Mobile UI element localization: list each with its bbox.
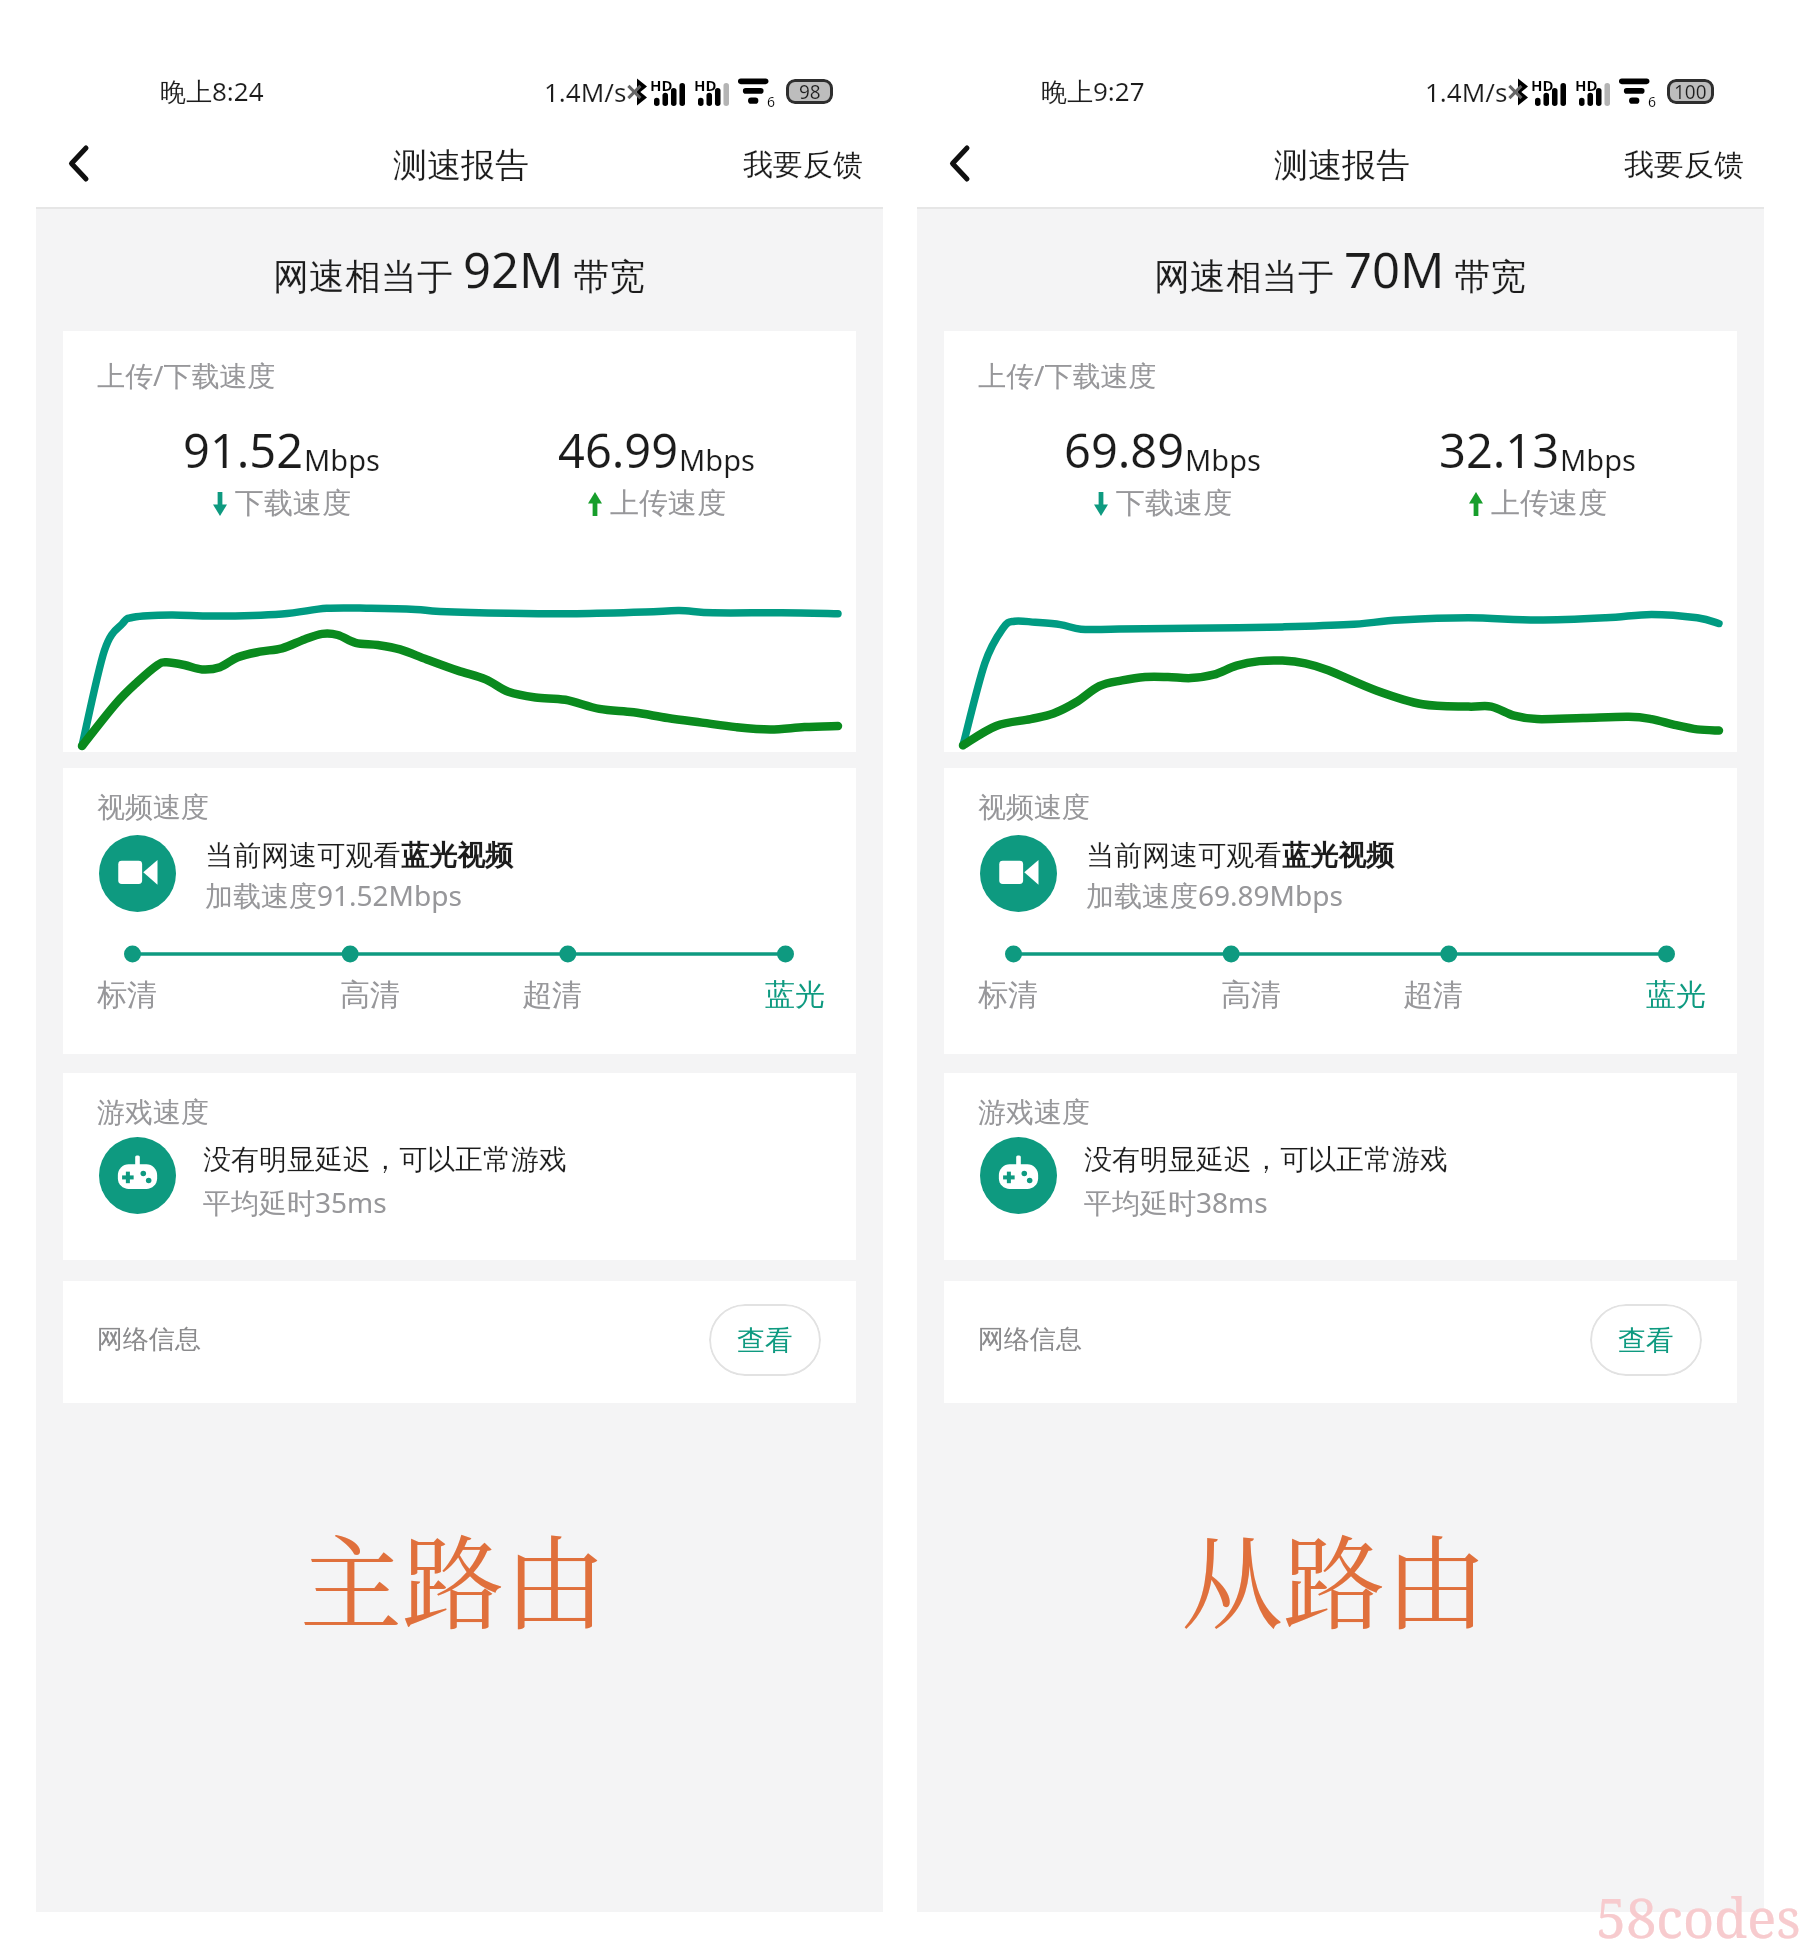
- staticText: 6: [767, 92, 776, 111]
- staticText: 69.89: [1064, 418, 1185, 482]
- button[interactable]: Back: [926, 130, 992, 196]
- staticText: 晚上9:27: [1041, 73, 1145, 109]
- staticText: 1.4M/s: [1425, 74, 1508, 109]
- staticText: 网速相当于: [273, 251, 463, 300]
- staticText: 58codes: [1596, 1880, 1800, 1950]
- staticText: 带宽: [564, 251, 646, 300]
- staticText: 超清: [1342, 976, 1524, 1014]
- staticText: 超清: [461, 976, 643, 1014]
- staticText: 测速报告: [1274, 144, 1410, 187]
- staticText: HD: [694, 75, 717, 95]
- staticText: 高清: [279, 976, 461, 1014]
- button[interactable]: 查看: [1590, 1304, 1702, 1376]
- staticText: 晚上8:24: [160, 73, 264, 109]
- staticText: Mbps: [304, 440, 380, 479]
- staticText: 加载速度69.89Mbps: [1086, 876, 1343, 914]
- staticText: 查看: [1618, 1323, 1674, 1358]
- staticText: 当前网速可观看: [1086, 838, 1282, 873]
- staticText: 1.4M/s: [544, 74, 627, 109]
- staticText: 当前网速可观看: [205, 838, 401, 873]
- staticText: 我要反馈: [1624, 146, 1744, 184]
- staticText: 带宽: [1445, 251, 1527, 300]
- button[interactable]: 我要反馈: [725, 132, 881, 198]
- staticText: 测速报告: [393, 144, 529, 187]
- staticText: 蓝光视频: [1282, 838, 1394, 873]
- staticText: 46.99: [558, 418, 679, 482]
- staticText: 高清: [1160, 976, 1342, 1014]
- staticText: 上传速度: [1491, 485, 1607, 522]
- staticText: 上传速度: [610, 485, 726, 522]
- staticText: 标清: [97, 976, 279, 1014]
- staticText: 蓝光视频: [401, 838, 513, 873]
- staticText: HD: [650, 75, 673, 95]
- staticText: 70M: [1344, 236, 1445, 303]
- staticText: 100: [1674, 79, 1707, 104]
- staticText: 加载速度91.52Mbps: [205, 876, 462, 914]
- staticText: 主路由: [300, 1504, 606, 1651]
- staticText: 上传/下载速度: [978, 356, 1157, 394]
- staticText: Mbps: [679, 440, 755, 479]
- staticText: 91.52: [183, 418, 304, 482]
- staticText: 网速相当于: [1154, 251, 1344, 300]
- staticText: 我要反馈: [743, 146, 863, 184]
- staticText: Mbps: [1560, 440, 1636, 479]
- staticText: 下载速度: [235, 485, 351, 522]
- staticText: 没有明显延迟，可以正常游戏: [1084, 1142, 1448, 1177]
- staticText: 平均延时38ms: [1084, 1183, 1268, 1221]
- staticText: 网络信息: [97, 1323, 201, 1356]
- staticText: 视频速度: [978, 790, 1090, 825]
- staticText: 从路由: [1181, 1504, 1487, 1651]
- staticText: 查看: [737, 1323, 793, 1358]
- staticText: HD: [1531, 75, 1554, 95]
- button[interactable]: Back: [45, 130, 111, 196]
- staticText: 上传/下载速度: [97, 356, 276, 394]
- staticText: 98: [799, 79, 821, 104]
- staticText: Mbps: [1185, 440, 1261, 479]
- staticText: 蓝光: [1524, 976, 1706, 1014]
- staticText: 6: [1648, 92, 1657, 111]
- staticText: 蓝光: [643, 976, 825, 1014]
- staticText: 网络信息: [978, 1323, 1082, 1356]
- staticText: HD: [1575, 75, 1598, 95]
- staticText: 下载速度: [1116, 485, 1232, 522]
- staticText: 32.13: [1439, 418, 1560, 482]
- staticText: 没有明显延迟，可以正常游戏: [203, 1142, 567, 1177]
- button[interactable]: 我要反馈: [1606, 132, 1762, 198]
- button[interactable]: 查看: [709, 1304, 821, 1376]
- staticText: 游戏速度: [97, 1095, 209, 1130]
- staticText: 平均延时35ms: [203, 1183, 387, 1221]
- staticText: 标清: [978, 976, 1160, 1014]
- staticText: 视频速度: [97, 790, 209, 825]
- staticText: 92M: [463, 236, 564, 303]
- staticText: 游戏速度: [978, 1095, 1090, 1130]
